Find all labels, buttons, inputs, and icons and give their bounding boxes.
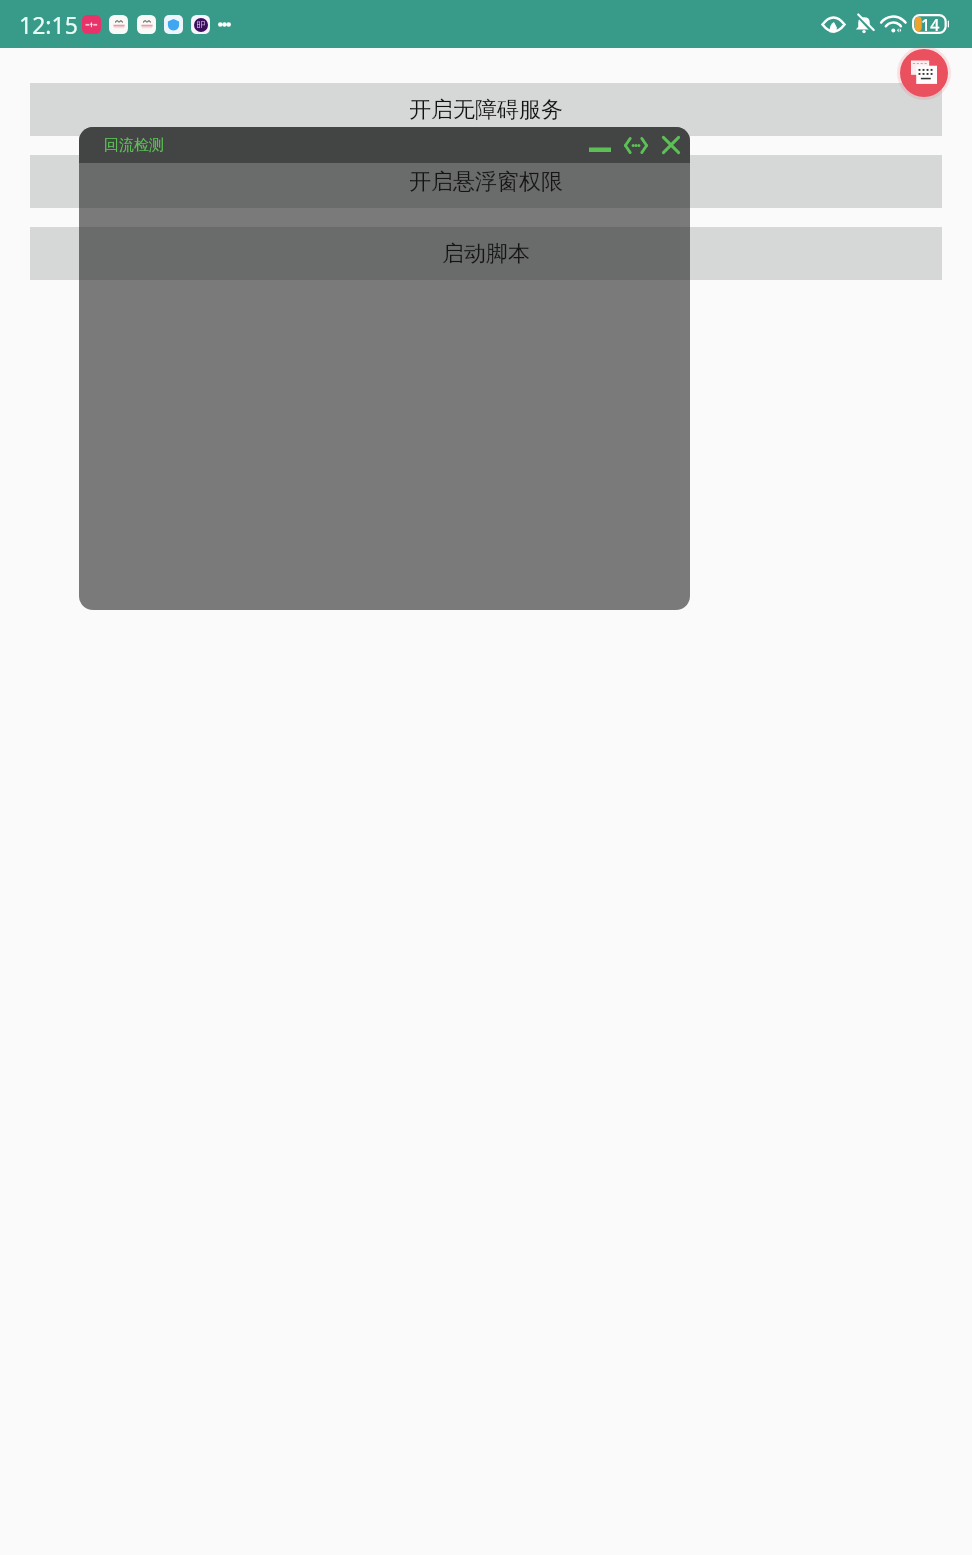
button[interactable]: 回流检测 floating window xyxy=(79,127,690,610)
button[interactable]: 启动脚本 xyxy=(30,227,942,280)
staticText: 开启无障碍服务 xyxy=(409,96,563,124)
staticText: 14 xyxy=(921,14,940,34)
button[interactable]: 开启悬浮窗权限 xyxy=(30,155,942,208)
button[interactable]: Resize window xyxy=(618,127,654,163)
button[interactable]: 开启无障碍服务 xyxy=(30,83,942,136)
button[interactable]: Open control panel xyxy=(900,49,948,97)
staticText: 回流检测 xyxy=(104,136,164,155)
staticText: 启动脚本 xyxy=(442,240,530,268)
button[interactable]: Minimize xyxy=(582,127,618,163)
button[interactable]: Close xyxy=(654,127,688,163)
staticText: 开启悬浮窗权限 xyxy=(409,168,563,196)
staticText: 12:15 xyxy=(19,9,78,40)
button[interactable]: 回流检测 xyxy=(79,127,178,163)
